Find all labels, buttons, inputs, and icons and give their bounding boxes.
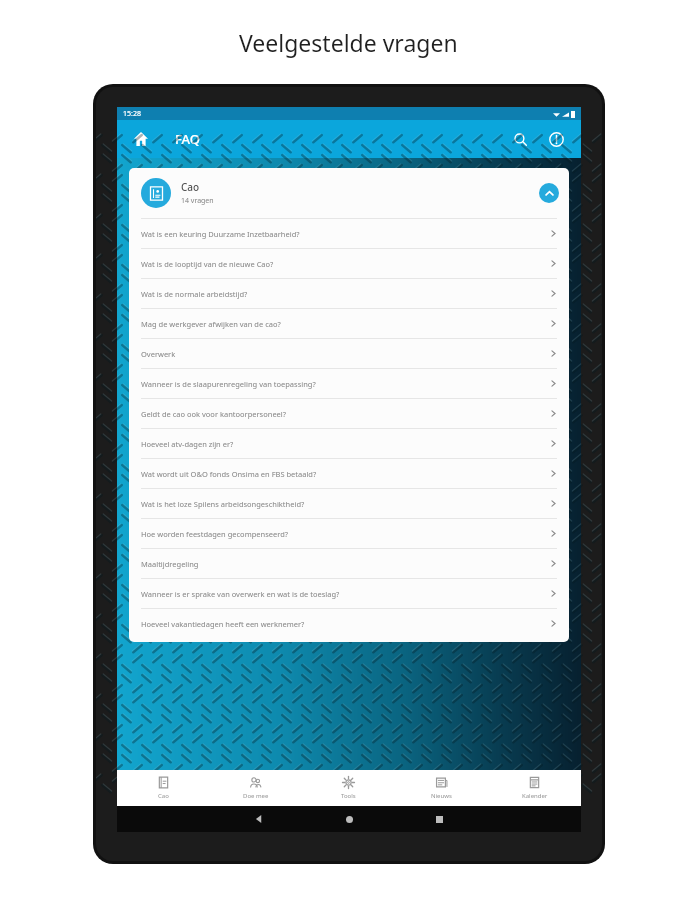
staticText: Mag de werkgever afwijken van de cao?: [141, 319, 550, 329]
button[interactable]: Hoeveel atv-dagen zijn er?: [129, 429, 569, 458]
staticText: Hoeveel atv-dagen zijn er?: [141, 439, 550, 449]
staticText: Wat is de normale arbeidstijd?: [141, 289, 550, 299]
staticText: Maaltijdregeling: [141, 559, 550, 569]
staticText: Cao: [181, 180, 200, 194]
staticText: Wanneer is de slaapurenregeling van toep…: [141, 379, 550, 389]
button[interactable]: Home: [304, 806, 394, 832]
staticText: Hoe worden feestdagen gecompenseerd?: [141, 529, 550, 539]
button[interactable]: Wanneer is de slaapurenregeling van toep…: [129, 369, 569, 398]
button[interactable]: Mag de werkgever afwijken van de cao?: [129, 309, 569, 338]
button[interactable]: Wanneer is er sprake van overwerk en wat…: [129, 579, 569, 608]
staticText: Doe mee: [243, 792, 269, 800]
staticText: Wat is het loze Spilens arbeidsongeschik…: [141, 499, 550, 509]
staticText: 14 vragen: [181, 196, 214, 206]
button[interactable]: Cao: [117, 770, 209, 806]
button[interactable]: Search: [507, 126, 533, 152]
staticText: Geldt de cao ook voor kantoorpersoneel?: [141, 409, 550, 419]
staticText: Wat wordt uit O&O fonds Onsima en FBS be…: [141, 469, 550, 479]
button[interactable]: Collapse: [539, 183, 559, 203]
button[interactable]: Hoe worden feestdagen gecompenseerd?: [129, 519, 569, 548]
button[interactable]: Geldt de cao ook voor kantoorpersoneel?: [129, 399, 569, 428]
button[interactable]: Wat is een keuring Duurzame Inzetbaarhei…: [129, 219, 569, 248]
staticText: Hoeveel vakantiedagen heeft een werkneme…: [141, 619, 550, 629]
staticText: Cao: [158, 792, 169, 800]
button[interactable]: Nieuws: [395, 770, 488, 806]
button[interactable]: Wat wordt uit O&O fonds Onsima en FBS be…: [129, 459, 569, 488]
button[interactable]: Recent apps: [394, 806, 484, 832]
button[interactable]: Cao: [129, 168, 569, 218]
button[interactable]: Home: [129, 127, 153, 151]
button[interactable]: Tools: [302, 770, 395, 806]
staticText: Kalender: [522, 792, 548, 800]
staticText: Veelgestelde vragen: [239, 27, 458, 58]
button[interactable]: Wat is de looptijd van de nieuwe Cao?: [129, 249, 569, 278]
button[interactable]: Wat is het loze Spilens arbeidsongeschik…: [129, 489, 569, 518]
button[interactable]: Back: [214, 806, 304, 832]
button[interactable]: Info: [543, 126, 569, 152]
button[interactable]: Doe mee: [209, 770, 302, 806]
staticText: 15:28: [123, 109, 141, 119]
button[interactable]: Wat is de normale arbeidstijd?: [129, 279, 569, 308]
staticText: Nieuws: [431, 792, 452, 800]
staticText: Tools: [341, 792, 356, 800]
staticText: Wat is een keuring Duurzame Inzetbaarhei…: [141, 229, 550, 239]
button[interactable]: Kalender: [488, 770, 581, 806]
staticText: Wat is de looptijd van de nieuwe Cao?: [141, 259, 550, 269]
staticText: Overwerk: [141, 349, 550, 359]
staticText: FAQ: [175, 130, 201, 148]
button[interactable]: Maaltijdregeling: [129, 549, 569, 578]
staticText: Wanneer is er sprake van overwerk en wat…: [141, 589, 550, 599]
button[interactable]: Hoeveel vakantiedagen heeft een werkneme…: [129, 609, 569, 638]
button[interactable]: Overwerk: [129, 339, 569, 368]
